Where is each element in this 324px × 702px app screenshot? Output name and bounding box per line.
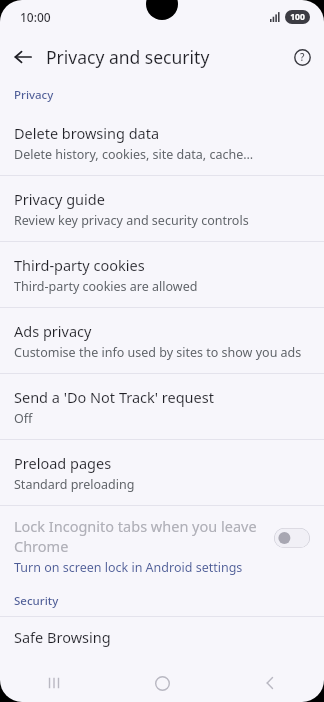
staticText: Privacy guide: [14, 189, 105, 209]
staticText: Lock Incognito tabs when you leave Chrom…: [14, 516, 266, 556]
staticText: Ads privacy: [14, 321, 92, 341]
staticText: Preload pages: [14, 453, 112, 473]
staticText: Delete history, cookies, site data, cach…: [14, 146, 254, 163]
staticText: 100: [290, 11, 305, 23]
staticText: ?: [300, 50, 305, 64]
staticText: Customise the info used by sites to show…: [14, 344, 302, 361]
button[interactable]: Privacy guide: [0, 176, 324, 241]
button[interactable]: Help: [280, 35, 324, 79]
button[interactable]: Third-party cookies: [0, 242, 324, 307]
staticText: Turn on screen lock in Android settings: [14, 559, 243, 576]
button[interactable]: Lock Incognito tabs toggle: [274, 528, 310, 548]
button[interactable]: Preload pages: [0, 440, 324, 505]
button[interactable]: Home: [108, 664, 216, 702]
button[interactable]: Back: [0, 34, 46, 80]
staticText: Security: [14, 593, 59, 609]
button[interactable]: Delete browsing data: [0, 110, 324, 175]
staticText: Privacy and security: [46, 45, 280, 69]
button[interactable]: Send a 'Do Not Track' request: [0, 374, 324, 439]
button[interactable]: Ads privacy: [0, 308, 324, 373]
staticText: Third-party cookies are allowed: [14, 278, 198, 295]
staticText: Review key privacy and security controls: [14, 212, 249, 229]
staticText: Privacy: [14, 87, 54, 103]
staticText: Delete browsing data: [14, 123, 160, 143]
staticText: Safe Browsing: [14, 627, 111, 647]
button[interactable]: Back: [216, 664, 324, 702]
button[interactable]: Safe Browsing: [0, 617, 324, 664]
button[interactable]: Lock Incognito tabs when you leave Chrom…: [0, 506, 324, 586]
staticText: Send a 'Do Not Track' request: [14, 387, 214, 407]
staticText: 10:00: [20, 9, 51, 25]
staticText: Third-party cookies: [14, 255, 145, 275]
staticText: Off: [14, 410, 33, 427]
button[interactable]: Recent apps: [0, 664, 108, 702]
staticText: Standard preloading: [14, 476, 135, 493]
